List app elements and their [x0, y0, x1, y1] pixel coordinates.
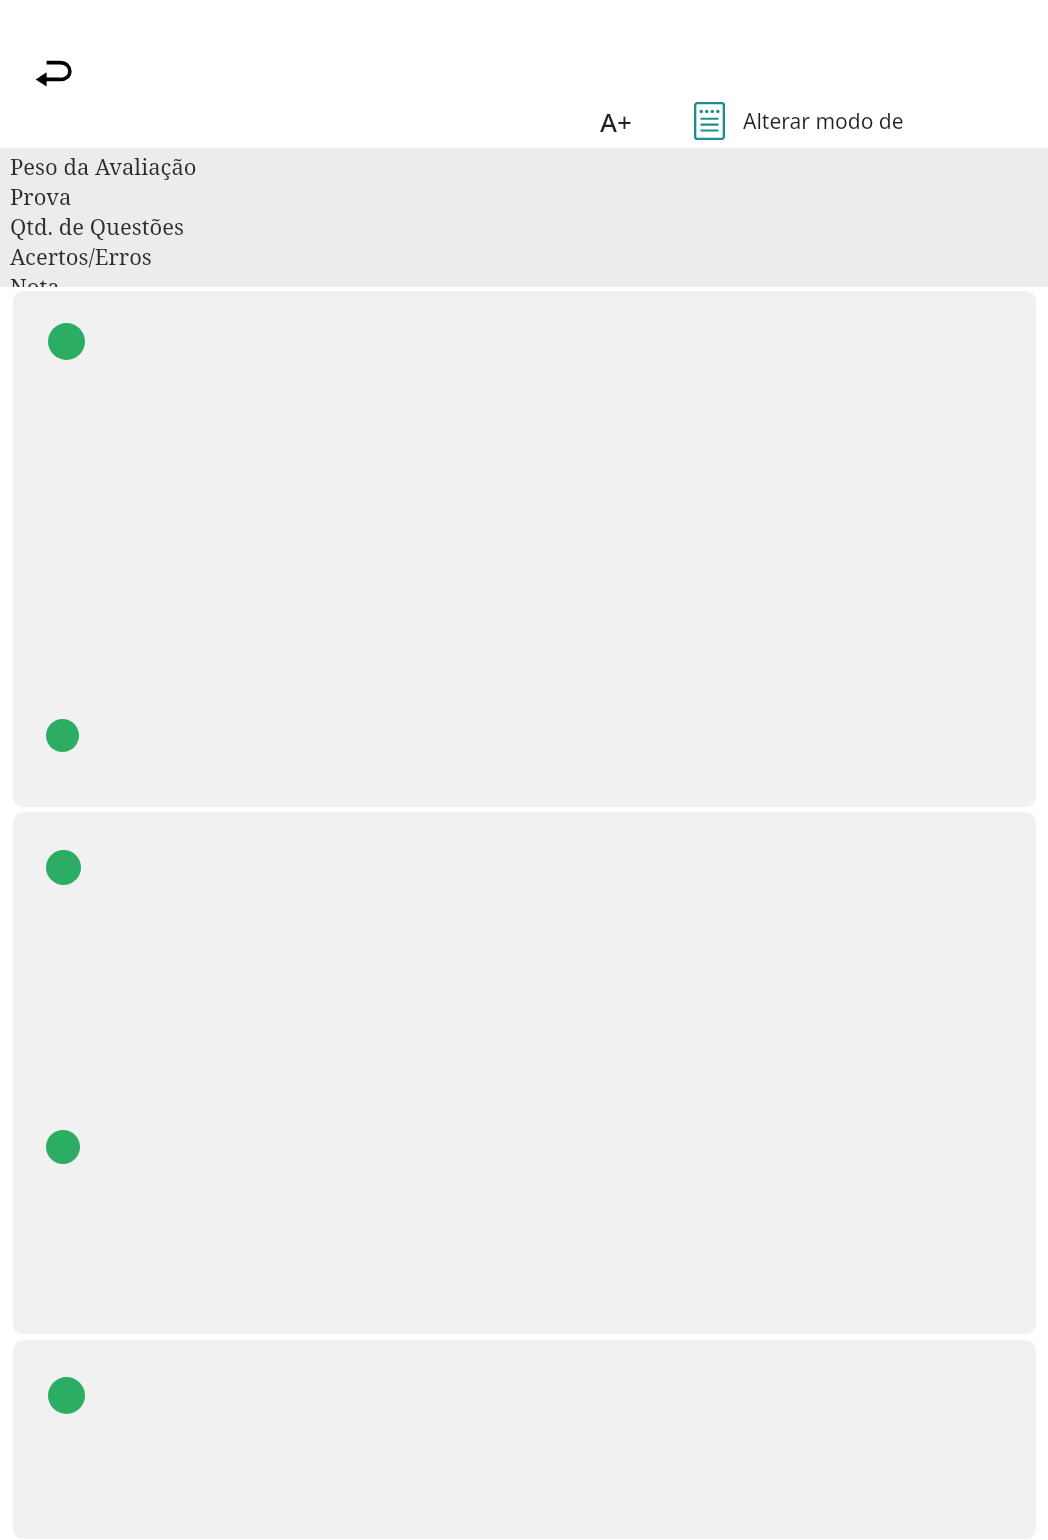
staticText: Qtd. de Questões: [10, 211, 184, 241]
staticText: Peso da Avaliação: [10, 151, 197, 181]
button[interactable]: [13, 1340, 1036, 1539]
button[interactable]: Alterar modo de visualização: [673, 95, 1036, 147]
staticText: Acertos/Erros: [10, 241, 152, 271]
button[interactable]: Voltar: [26, 42, 84, 100]
staticText: Alterar modo de visualização: [743, 107, 1018, 136]
button[interactable]: A+: [569, 95, 663, 147]
button[interactable]: [13, 812, 1036, 1334]
button[interactable]: [13, 291, 1036, 807]
staticText: A+: [600, 104, 632, 139]
staticText: Nota: [10, 271, 60, 287]
staticText: Prova: [10, 181, 72, 211]
